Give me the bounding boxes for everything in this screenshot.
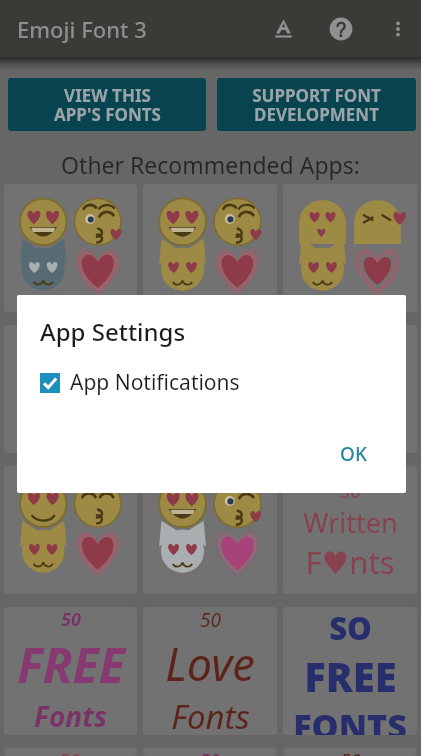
- button[interactable]: SO: [283, 607, 417, 735]
- staticText: 50: [340, 748, 361, 756]
- button[interactable]: VIEW THIS APP'S FONTS: [8, 78, 206, 131]
- staticText: 50: [60, 748, 82, 756]
- button[interactable]: 50: [4, 748, 137, 756]
- staticText: SO: [329, 607, 372, 649]
- staticText: FREE: [304, 649, 397, 703]
- staticText: Fonts: [171, 694, 250, 735]
- staticText: 50: [61, 607, 81, 632]
- button[interactable]: [4, 184, 137, 312]
- button[interactable]: Change font: [255, 0, 312, 57]
- staticText: FREE: [17, 632, 125, 697]
- staticText: 50: [339, 478, 361, 504]
- staticText: FONTS: [293, 421, 407, 453]
- staticText: F♥nts: [305, 541, 395, 583]
- button[interactable]: Help: [312, 0, 370, 57]
- button[interactable]: App Notifications: [40, 368, 406, 397]
- button[interactable]: More options: [370, 1, 421, 57]
- staticText: Fonts: [34, 697, 107, 735]
- staticText: OK: [340, 441, 367, 467]
- button[interactable]: [143, 466, 277, 594]
- staticText: VIEW THIS APP'S FONTS: [54, 84, 161, 126]
- staticText: App Settings: [40, 315, 186, 348]
- button[interactable]: [143, 184, 277, 312]
- button[interactable]: SO: [283, 325, 417, 453]
- staticText: 50: [200, 607, 221, 633]
- staticText: Love: [165, 633, 255, 694]
- button[interactable]: [4, 466, 137, 594]
- staticText: App Notifications: [70, 368, 240, 397]
- button[interactable]: 50: [283, 748, 417, 756]
- button[interactable]: 50: [143, 607, 277, 735]
- staticText: 50: [200, 748, 220, 756]
- button[interactable]: SUPPORT FONT DEVELOPMENT: [217, 78, 416, 131]
- staticText: Written: [303, 504, 398, 541]
- button[interactable]: 50: [4, 607, 137, 735]
- button[interactable]: 50: [143, 748, 277, 756]
- button[interactable]: [143, 325, 277, 453]
- button[interactable]: [4, 325, 137, 453]
- staticText: Emoji Font 3: [17, 14, 147, 44]
- button[interactable]: OK: [328, 434, 379, 474]
- button[interactable]: 50: [283, 466, 417, 594]
- staticText: Other Recommended Apps:: [0, 149, 421, 180]
- staticText: FONTS: [293, 703, 407, 735]
- staticText: SUPPORT FONT DEVELOPMENT: [252, 84, 381, 126]
- button[interactable]: [283, 184, 417, 312]
